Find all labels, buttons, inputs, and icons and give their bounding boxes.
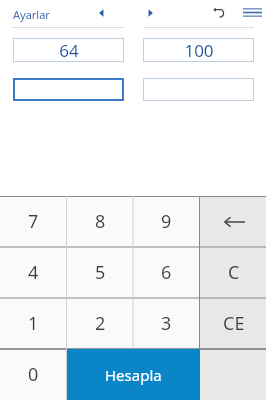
button[interactable]: 7 — [0, 196, 67, 247]
button[interactable]: Ayarlar — [11, 5, 52, 24]
button[interactable]: Undo — [208, 2, 229, 23]
button[interactable]: 4 — [0, 247, 67, 298]
staticText: Ayarlar — [13, 7, 50, 22]
staticText: 7 — [28, 209, 39, 234]
button[interactable]: 64 — [13, 38, 124, 62]
staticText: CE — [223, 311, 245, 336]
staticText: 100 — [184, 39, 214, 62]
button[interactable] — [13, 78, 124, 101]
button[interactable]: 3 — [133, 298, 200, 349]
staticText: 2 — [95, 311, 106, 336]
button[interactable]: 1 — [0, 298, 67, 349]
button[interactable]: Next — [140, 3, 160, 23]
button[interactable]: ← — [200, 196, 266, 247]
staticText: 9 — [161, 209, 172, 234]
button[interactable]: Menu — [240, 2, 264, 23]
staticText: C — [228, 260, 240, 285]
button[interactable]: C — [200, 247, 266, 298]
button[interactable] — [143, 78, 254, 101]
button[interactable]: 2 — [67, 298, 134, 349]
button[interactable]: 8 — [67, 196, 134, 247]
staticText: 1 — [28, 311, 39, 336]
button[interactable]: 100 — [143, 38, 254, 62]
button[interactable]: Hesapla — [67, 349, 200, 400]
button[interactable]: Previous — [92, 3, 112, 23]
button[interactable]: 6 — [133, 247, 200, 298]
staticText: 6 — [161, 260, 172, 285]
staticText: 4 — [28, 260, 39, 285]
staticText: 64 — [59, 39, 79, 62]
staticText: 3 — [161, 311, 172, 336]
button[interactable]: 0 — [0, 349, 67, 400]
staticText: Hesapla — [105, 365, 162, 385]
button[interactable]: 9 — [133, 196, 200, 247]
staticText: 5 — [95, 260, 106, 285]
button[interactable]: 5 — [67, 247, 134, 298]
button[interactable]: CE — [200, 298, 266, 349]
staticText: 0 — [28, 362, 39, 387]
staticText: 8 — [95, 209, 106, 234]
